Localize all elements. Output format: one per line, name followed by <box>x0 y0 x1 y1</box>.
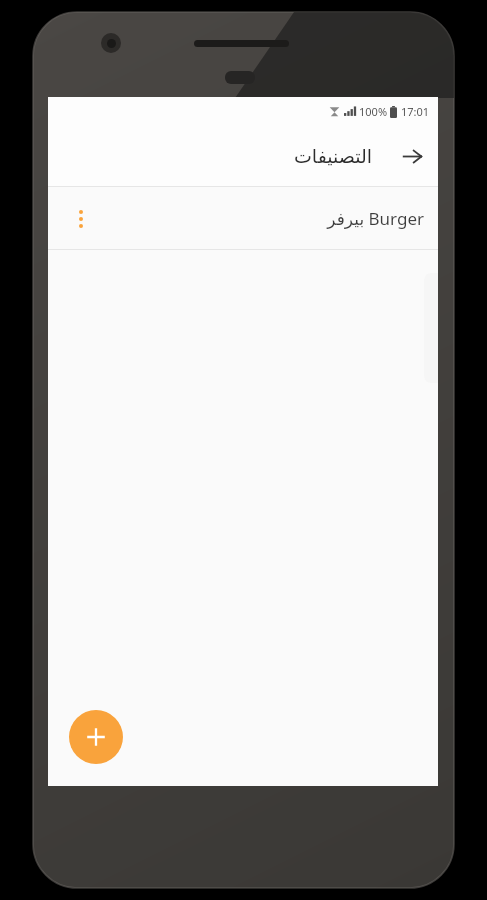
button[interactable]: Add category <box>69 710 123 764</box>
button[interactable]: More options <box>66 197 96 241</box>
staticText: بيرفر Burger <box>327 207 424 230</box>
staticText: التصنيفات <box>293 145 372 167</box>
staticText: 100% <box>359 104 388 119</box>
button[interactable]: Back <box>390 134 434 178</box>
button[interactable]: More options <box>48 187 438 250</box>
staticText: 17:01 <box>401 104 430 119</box>
